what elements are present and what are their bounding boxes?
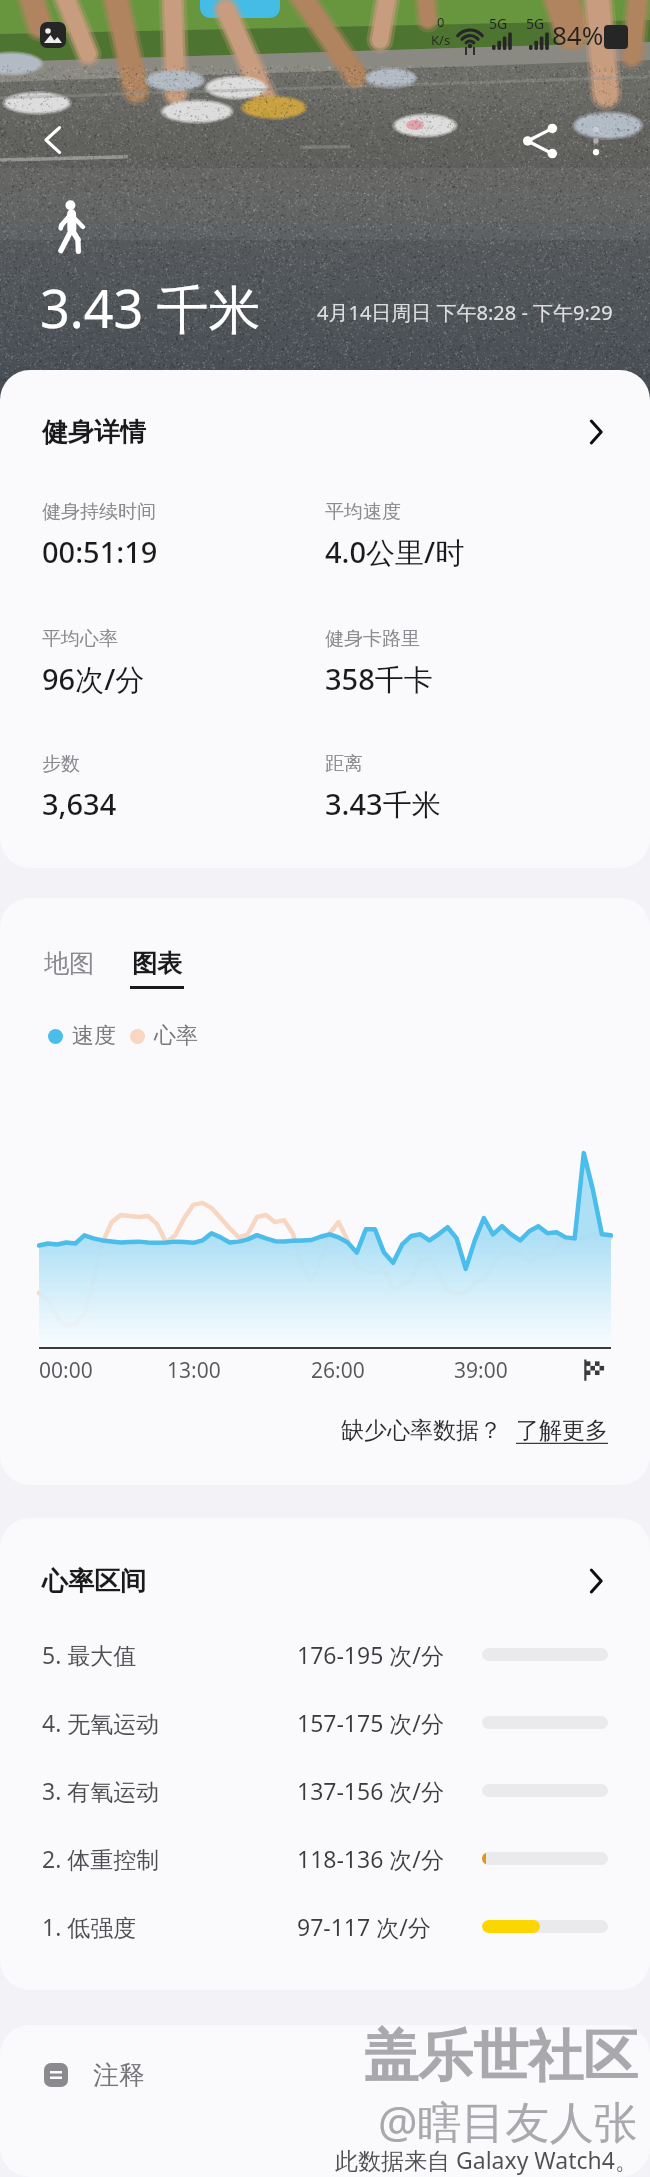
staticText: 缺少心率数据？ bbox=[341, 1416, 502, 1445]
staticText: 此数据来自 Galaxy Watch4。 bbox=[335, 2144, 638, 2175]
staticText: 2. 体重控制 bbox=[42, 1843, 297, 1874]
staticText: 1. 低强度 bbox=[42, 1911, 297, 1942]
staticText: 3.43千米 bbox=[325, 784, 441, 824]
staticText: 距离 bbox=[325, 752, 363, 776]
button[interactable]: Back bbox=[26, 113, 80, 167]
staticText: 13:00 bbox=[167, 1356, 221, 1385]
staticText: 健身详情 bbox=[42, 416, 146, 449]
staticText: 0 bbox=[437, 13, 445, 31]
staticText: 平均心率 bbox=[42, 627, 118, 651]
staticText: 3. 有氧运动 bbox=[42, 1775, 297, 1806]
button[interactable]: 图表 bbox=[130, 948, 184, 989]
staticText: 图表 bbox=[132, 948, 182, 979]
staticText: 心率区间 bbox=[42, 1565, 146, 1598]
staticText: @瞎目友人张 bbox=[378, 2091, 638, 2151]
staticText: 84% bbox=[552, 17, 604, 52]
staticText: 地图 bbox=[44, 948, 94, 979]
staticText: 137-156 次/分 bbox=[297, 1775, 482, 1806]
staticText: 118-136 次/分 bbox=[297, 1843, 482, 1874]
staticText: 157-175 次/分 bbox=[297, 1707, 482, 1738]
staticText: 步数 bbox=[42, 752, 80, 776]
staticText: 速度 bbox=[72, 1022, 116, 1050]
button[interactable]: 健身详情 bbox=[0, 370, 650, 494]
staticText: 96次/分 bbox=[42, 659, 145, 699]
button[interactable]: More options bbox=[568, 113, 624, 169]
staticText: 3.43 千米 bbox=[40, 272, 261, 343]
button[interactable]: 心率区间 bbox=[0, 1518, 650, 1644]
staticText: 26:00 bbox=[311, 1356, 365, 1385]
button[interactable]: 了解更多 bbox=[516, 1416, 608, 1445]
staticText: 心率 bbox=[154, 1022, 198, 1050]
button[interactable]: 地图 bbox=[42, 948, 96, 979]
staticText: 4月14日周日 下午8:28 - 下午9:29 bbox=[317, 299, 613, 326]
staticText: 注释 bbox=[93, 2059, 145, 2092]
staticText: 健身卡路里 bbox=[325, 627, 420, 651]
staticText: 健身持续时间 bbox=[42, 500, 156, 524]
button[interactable]: 注释 bbox=[0, 2025, 650, 2125]
staticText: 盖乐世社区 bbox=[363, 2022, 638, 2091]
staticText: 4. 无氧运动 bbox=[42, 1707, 297, 1738]
staticText: 了解更多 bbox=[516, 1416, 608, 1445]
staticText: 39:00 bbox=[454, 1356, 508, 1385]
staticText: 358千卡 bbox=[325, 659, 433, 699]
staticText: 00:51:19 bbox=[42, 532, 158, 571]
button[interactable]: Share bbox=[512, 113, 568, 169]
staticText: 176-195 次/分 bbox=[297, 1639, 482, 1670]
staticText: 4.0公里/时 bbox=[325, 532, 465, 572]
staticText: 00:00 bbox=[39, 1356, 93, 1385]
staticText: 5. 最大值 bbox=[42, 1639, 297, 1670]
staticText: 3,634 bbox=[42, 784, 117, 823]
staticText: K/s bbox=[431, 31, 451, 49]
staticText: 5G bbox=[526, 14, 545, 33]
staticText: 平均速度 bbox=[325, 500, 401, 524]
staticText: 97-117 次/分 bbox=[297, 1911, 482, 1942]
staticText: 5G bbox=[489, 14, 508, 33]
